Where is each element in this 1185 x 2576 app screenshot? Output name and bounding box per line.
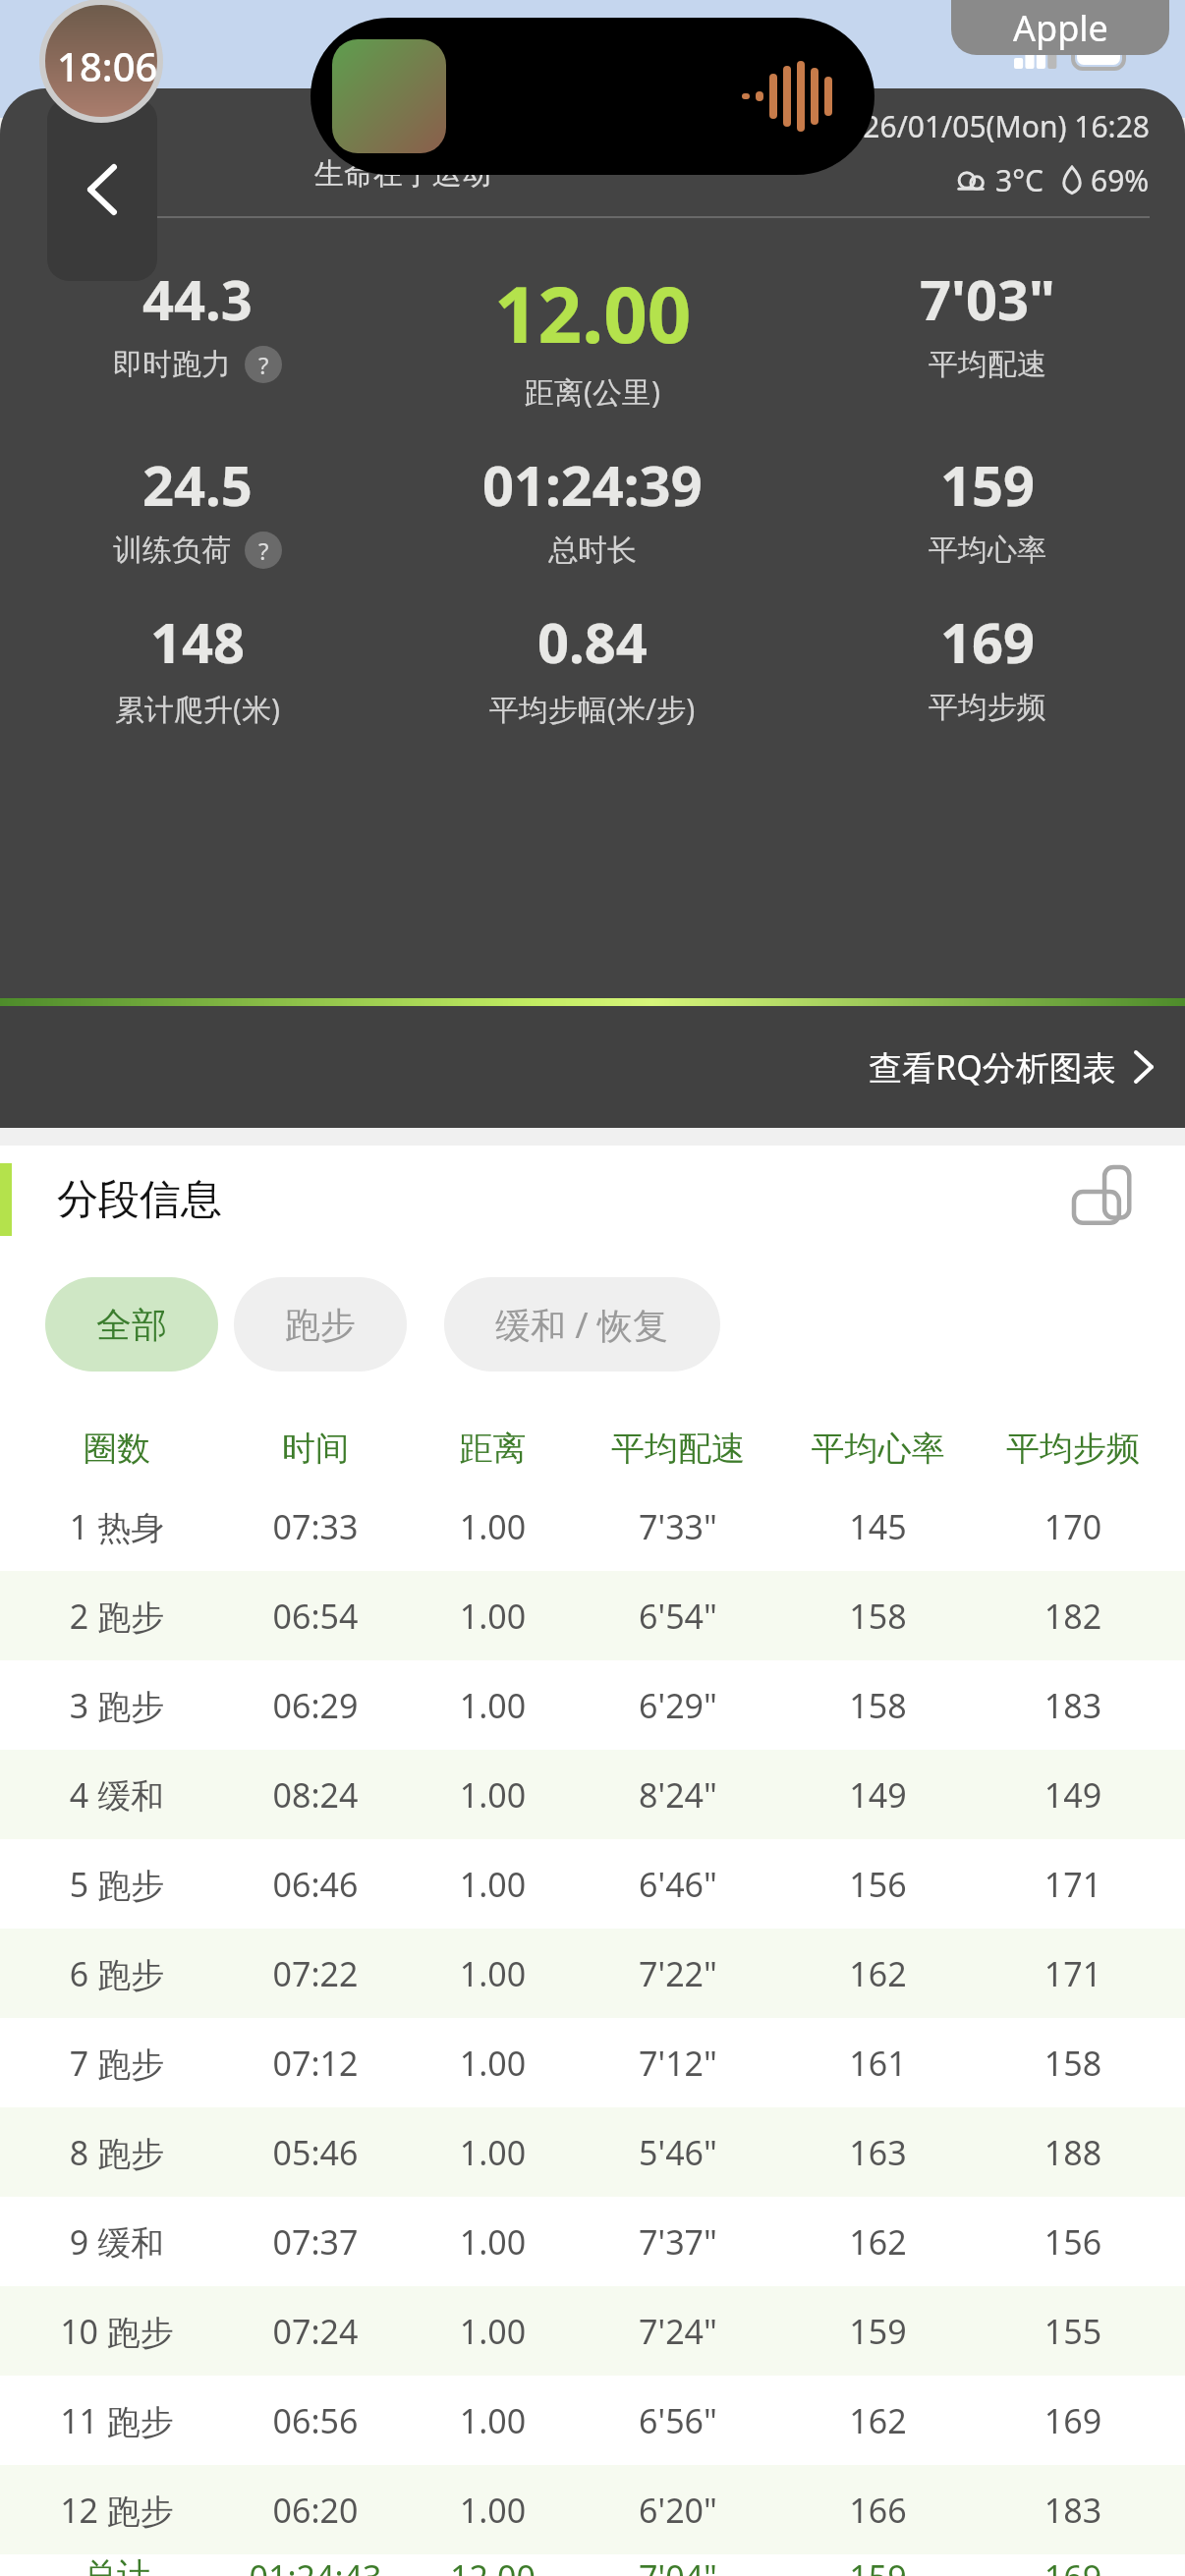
staticText: 10 跑步 <box>14 2309 220 2354</box>
staticText: 1.00 <box>411 2219 575 2265</box>
staticText: 170 <box>975 1504 1171 1549</box>
button[interactable]: 5 跑步 <box>0 1839 1185 1929</box>
staticText: 162 <box>781 2398 975 2443</box>
staticText: 01:24:43 <box>220 2554 411 2576</box>
button[interactable]: 10 跑步 <box>0 2286 1185 2376</box>
staticText: 7'04" <box>575 2554 781 2576</box>
staticText: 158 <box>781 1594 975 1639</box>
staticText: 跑步 <box>285 1303 356 1347</box>
staticText: 08:24 <box>220 1772 411 1818</box>
button[interactable]: 2 跑步 <box>0 1571 1185 1660</box>
staticText: 06:54 <box>220 1594 411 1639</box>
staticText: 07:37 <box>220 2219 411 2265</box>
staticText: 159 <box>781 2554 975 2576</box>
button[interactable]: 7 跑步 <box>0 2018 1185 2107</box>
staticText: 平均配速 <box>575 1428 781 1470</box>
staticText: 7'12" <box>575 2041 781 2086</box>
button[interactable]: 12 跑步 <box>0 2465 1185 2554</box>
button[interactable]: Rotate screen <box>1063 1163 1157 1236</box>
staticText: 总计 <box>14 2554 220 2576</box>
staticText: 171 <box>975 1862 1171 1907</box>
button[interactable]: 9 缓和 <box>0 2197 1185 2286</box>
staticText: 5 跑步 <box>14 1862 220 1907</box>
staticText: 171 <box>975 1951 1171 1996</box>
staticText: 162 <box>781 1951 975 1996</box>
button[interactable]: Back <box>47 98 157 281</box>
staticText: 1.00 <box>411 2488 575 2533</box>
staticText: 时间 <box>220 1428 411 1470</box>
staticText: 平均步幅(米/步) <box>489 689 696 729</box>
staticText: 1.00 <box>411 1862 575 1907</box>
staticText: 6'29" <box>575 1683 781 1728</box>
staticText: 平均心率 <box>781 1428 975 1470</box>
staticText: 155 <box>975 2309 1171 2354</box>
staticText: 7'22" <box>575 1951 781 1996</box>
staticText: 169 <box>975 2398 1171 2443</box>
staticText: ? <box>258 349 269 381</box>
staticText: 44.3 <box>142 261 253 336</box>
staticText: 3°C <box>995 160 1044 200</box>
staticText: 2 跑步 <box>14 1594 220 1639</box>
staticText: 6'46" <box>575 1862 781 1907</box>
staticText: 分段信息 <box>57 1174 222 1226</box>
staticText: 145 <box>781 1504 975 1549</box>
staticText: 156 <box>781 1862 975 1907</box>
staticText: 1.00 <box>411 1504 575 1549</box>
staticText: 9 缓和 <box>14 2219 220 2265</box>
staticText: 训练负荷 <box>113 532 231 569</box>
staticText: 2026/01/05(Mon) 16:28 <box>829 106 1150 146</box>
button[interactable]: 4 缓和 <box>0 1750 1185 1839</box>
button[interactable]: 6 跑步 <box>0 1929 1185 2018</box>
staticText: 11 跑步 <box>14 2398 220 2443</box>
button[interactable]: 11 跑步 <box>0 2376 1185 2465</box>
staticText: 162 <box>781 2219 975 2265</box>
button[interactable]: 查看RQ分析图表 <box>0 1006 1185 1128</box>
staticText: 169 <box>940 604 1036 679</box>
staticText: 1.00 <box>411 2309 575 2354</box>
staticText: 182 <box>975 1594 1171 1639</box>
staticText: 8 跑步 <box>14 2130 220 2175</box>
button[interactable]: 跑步 <box>234 1277 407 1372</box>
staticText: 12.00 <box>494 261 692 365</box>
staticText: 3 跑步 <box>14 1683 220 1728</box>
staticText: 1.00 <box>411 1594 575 1639</box>
staticText: 149 <box>975 1772 1171 1818</box>
staticText: 4 缓和 <box>14 1772 220 1818</box>
staticText: 69% <box>1091 160 1150 200</box>
staticText: 149 <box>781 1772 975 1818</box>
button[interactable]: 1 热身 <box>0 1482 1185 1571</box>
staticText: 7 跑步 <box>14 2041 220 2086</box>
staticText: 148 <box>150 604 246 679</box>
staticText: 圈数 <box>14 1428 220 1470</box>
staticText: 平均配速 <box>929 346 1046 383</box>
staticText: 总时长 <box>548 532 637 569</box>
staticText: 1.00 <box>411 1772 575 1818</box>
staticText: 5'46" <box>575 2130 781 2175</box>
staticText: 6'54" <box>575 1594 781 1639</box>
button[interactable]: Help <box>245 346 282 383</box>
staticText: 183 <box>975 2488 1171 2533</box>
staticText: 06:20 <box>220 2488 411 2533</box>
staticText: 12.00 <box>411 2554 575 2576</box>
staticText: 6'56" <box>575 2398 781 2443</box>
staticText: 1.00 <box>411 1683 575 1728</box>
staticText: 1.00 <box>411 1951 575 1996</box>
button[interactable]: 8 跑步 <box>0 2107 1185 2197</box>
staticText: 查看RQ分析图表 <box>869 1044 1116 1090</box>
staticText: 07:24 <box>220 2309 411 2354</box>
staticText: 平均心率 <box>929 532 1046 569</box>
staticText: 1 热身 <box>14 1504 220 1549</box>
button[interactable]: 3 跑步 <box>0 1660 1185 1750</box>
staticText: 1.00 <box>411 2041 575 2086</box>
button[interactable]: 全部 <box>45 1277 218 1372</box>
button[interactable]: 缓和 / 恢复 <box>444 1277 720 1372</box>
button[interactable]: Help <box>245 532 282 569</box>
staticText: 06:56 <box>220 2398 411 2443</box>
staticText: 6'20" <box>575 2488 781 2533</box>
staticText: 183 <box>975 1683 1171 1728</box>
staticText: 7'33" <box>575 1504 781 1549</box>
staticText: 166 <box>781 2488 975 2533</box>
staticText: 累计爬升(米) <box>115 689 280 729</box>
staticText: 07:33 <box>220 1504 411 1549</box>
staticText: 7'24" <box>575 2309 781 2354</box>
